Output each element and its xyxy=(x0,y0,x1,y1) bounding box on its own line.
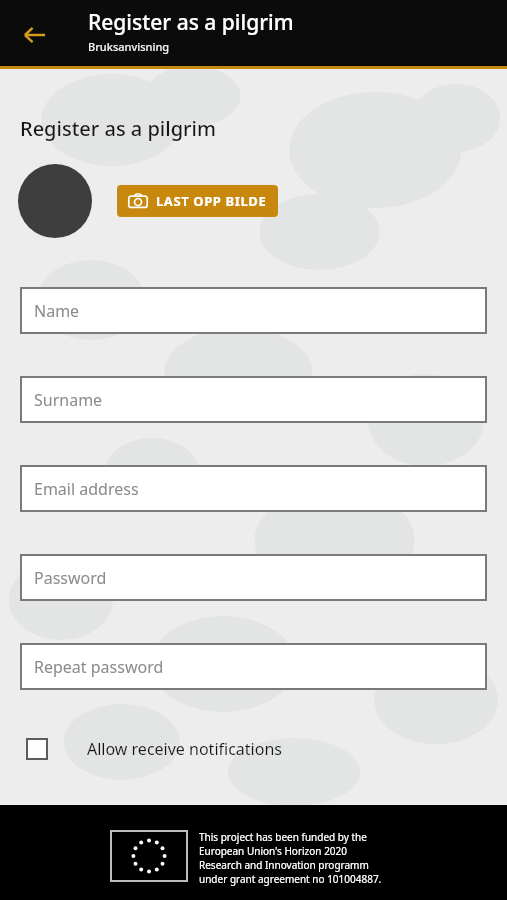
button[interactable]: Name xyxy=(20,287,487,334)
button[interactable]: Surname xyxy=(20,376,487,423)
staticText: This project has been funded by the xyxy=(199,830,367,844)
staticText: Password xyxy=(34,567,107,589)
staticText: Surname xyxy=(34,389,103,411)
staticText: Email address xyxy=(34,478,139,500)
button[interactable]: Email address xyxy=(20,465,487,512)
staticText: European Union's Horizon 2020 xyxy=(199,844,348,858)
staticText: Register as a pilgrim xyxy=(88,8,294,37)
staticText: Bruksanvisning xyxy=(88,39,170,54)
staticText: Name xyxy=(34,300,80,322)
button[interactable]: Password xyxy=(20,554,487,601)
staticText: Allow receive notifications xyxy=(87,738,282,760)
button[interactable]: Repeat password xyxy=(20,643,487,690)
staticText: LAST OPP BILDE xyxy=(156,192,267,210)
staticText: Register as a pilgrim xyxy=(20,115,216,142)
staticText: under grant agreement no 101004887. xyxy=(199,872,382,886)
staticText: Research and Innovation programm xyxy=(199,858,369,872)
staticText: Repeat password xyxy=(34,656,164,678)
button[interactable]: Back xyxy=(14,14,56,56)
button[interactable]: LAST OPP BILDE xyxy=(117,185,278,217)
button[interactable]: Allow receive notifications xyxy=(0,729,507,769)
